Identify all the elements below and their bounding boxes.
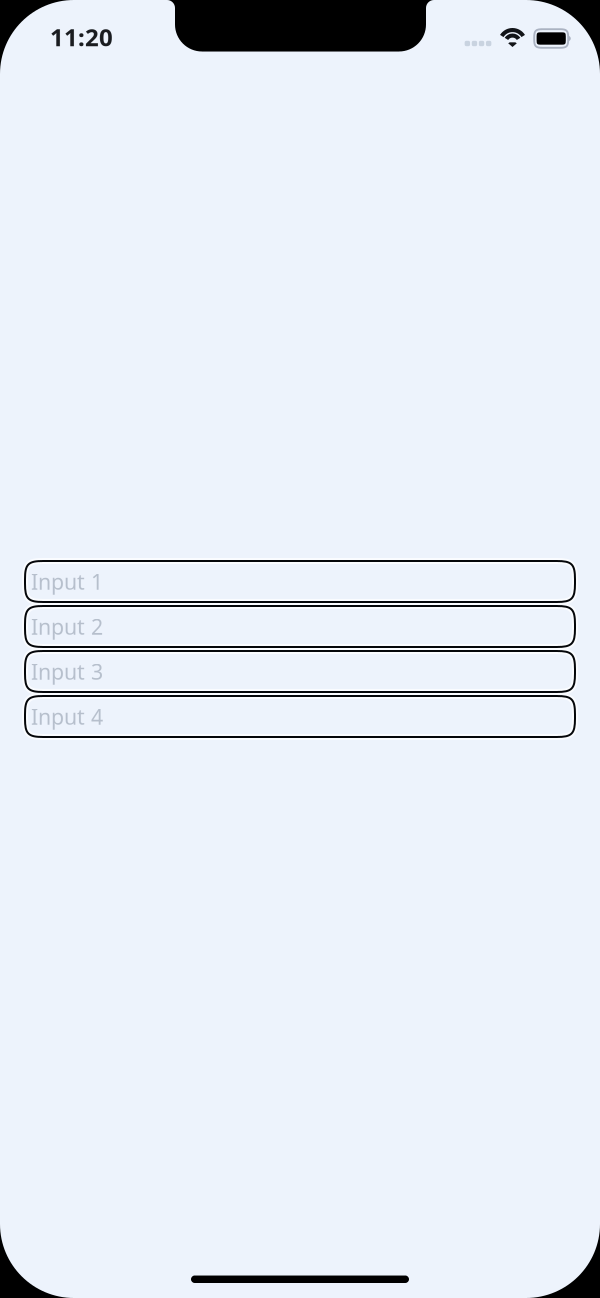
- staticText: Input 1: [31, 567, 103, 596]
- staticText: Input 2: [31, 612, 103, 641]
- button[interactable]: Input 3: [25, 651, 575, 692]
- staticText: Input 4: [31, 702, 103, 731]
- staticText: 11:20: [50, 21, 113, 53]
- button[interactable]: Input 4: [25, 696, 575, 737]
- button[interactable]: Input 2: [25, 606, 575, 647]
- button[interactable]: Input 1: [25, 561, 575, 602]
- staticText: Input 3: [31, 657, 103, 686]
